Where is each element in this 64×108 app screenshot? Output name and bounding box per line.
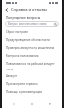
button[interactable]: Вопрос или ключевое слово xyxy=(5,21,59,27)
staticText: Пожаловаться на рабочий аккаунт xyxy=(6,62,55,66)
staticText: Предупреждение об опасности xyxy=(6,38,50,42)
button[interactable]: Проверка аккаунта на мошенника xyxy=(2,44,62,52)
staticText: Популярные вопросы xyxy=(6,16,41,20)
staticText: Сброс настроек xyxy=(6,30,28,34)
button[interactable]: Сброс настроек xyxy=(2,28,62,36)
staticText: что-то xyxy=(6,67,14,70)
button[interactable]: Просмотрели сервисы xyxy=(2,80,62,88)
button[interactable]: Пожаловаться на рабочий аккаунт xyxy=(2,60,62,72)
button[interactable]: Контроль пользования xyxy=(2,52,62,60)
staticText: Справка и отзывы xyxy=(11,7,58,12)
button[interactable]: Home xyxy=(26,100,38,108)
button[interactable]: Back xyxy=(8,100,20,108)
staticText: Проверка аккаунта на мошенника xyxy=(6,46,55,50)
staticText: Аккаунт xyxy=(6,74,18,78)
button[interactable]: Предупреждение об опасности xyxy=(2,36,62,44)
button[interactable]: Back xyxy=(2,5,11,14)
button[interactable]: Помощь и рекомендации xyxy=(2,88,62,96)
other: Search xyxy=(53,22,57,26)
staticText: Помощь и рекомендации xyxy=(6,90,43,94)
button[interactable]: Аккаунт xyxy=(2,72,62,80)
button[interactable]: Recent apps xyxy=(44,100,56,108)
staticText: Контроль пользования xyxy=(6,54,39,58)
staticText: Вопрос или ключевое слово xyxy=(8,22,47,26)
staticText: Просмотрели сервисы xyxy=(6,82,38,86)
